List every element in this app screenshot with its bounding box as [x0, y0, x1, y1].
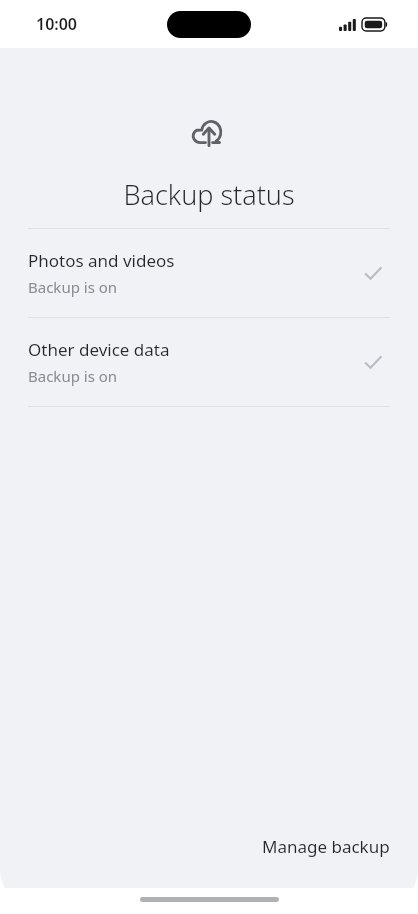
staticText: 10:00 — [36, 13, 78, 35]
staticText: Backup status — [123, 176, 295, 213]
other: Backup enabled — [356, 256, 390, 290]
other: Backup enabled — [356, 345, 390, 379]
button[interactable]: Manage backup — [250, 825, 402, 868]
staticText: Backup is on — [28, 366, 118, 386]
button[interactable]: Photos and videos — [0, 229, 418, 317]
staticText: Backup is on — [28, 277, 118, 297]
staticText: Photos and videos — [28, 249, 175, 272]
staticText: Manage backup — [262, 835, 390, 858]
button[interactable]: Other device data — [0, 318, 418, 406]
staticText: Other device data — [28, 338, 170, 361]
